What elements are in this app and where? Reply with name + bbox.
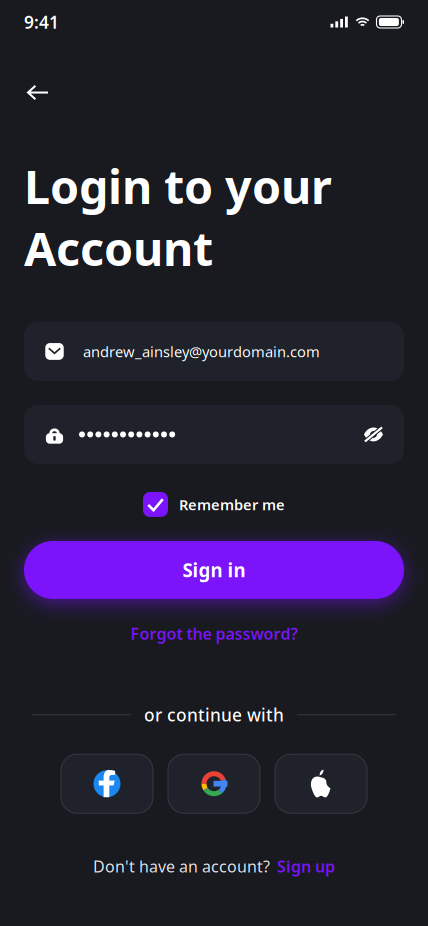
staticText: andrew_ainsley@yourdomain.com (83, 342, 320, 361)
button[interactable]: Continue with Facebook (61, 754, 153, 813)
button[interactable]: Remember me (143, 492, 285, 517)
staticText: 9:41 (24, 10, 59, 33)
staticText: or continue with (144, 703, 284, 726)
button[interactable]: Continue with Google (168, 754, 260, 813)
staticText: Login to your Account (24, 155, 332, 279)
button[interactable]: Continue with Apple (275, 754, 367, 813)
staticText: Don't have an account? (93, 856, 270, 877)
button[interactable]: Sign up (277, 856, 335, 877)
button[interactable]: Sign in (24, 541, 404, 599)
staticText: Remember me (179, 495, 285, 514)
staticText: Sign up (277, 856, 335, 877)
staticText: Sign in (182, 557, 245, 582)
staticText: Forgot the password? (130, 623, 297, 644)
button[interactable]: Forgot the password? (130, 619, 297, 648)
button[interactable]: Back (13, 70, 62, 115)
